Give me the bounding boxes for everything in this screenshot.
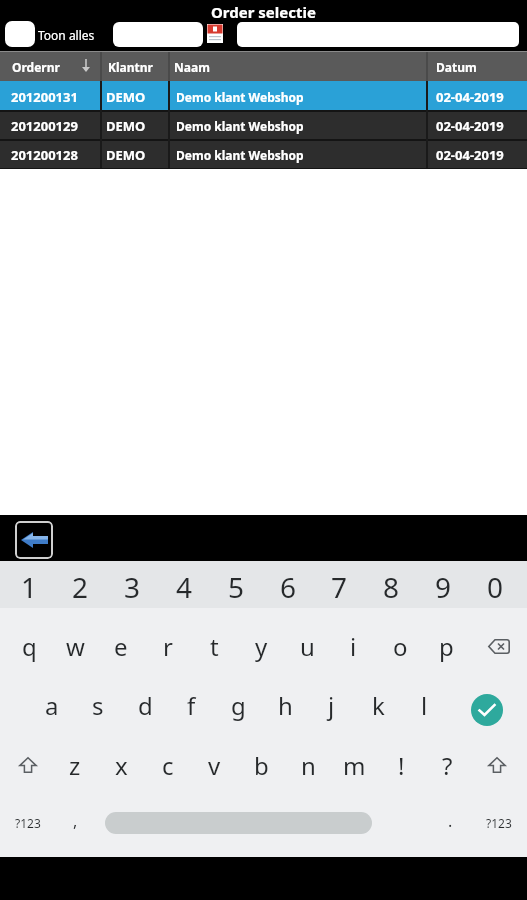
staticText: i [350,630,357,663]
staticText: c [162,749,174,782]
staticText: y [255,630,268,663]
button[interactable]: l [401,677,447,733]
staticText: DEMO [106,146,146,164]
button[interactable]: 5 [211,563,261,610]
staticText: 7 [331,568,348,606]
button[interactable] [207,24,224,44]
staticText: z [69,749,81,782]
staticText: j [328,689,335,722]
button[interactable]: z [52,737,98,793]
button[interactable] [237,22,519,47]
button[interactable]: 3 [107,563,157,610]
staticText: 1 [21,568,38,606]
staticText: DEMO [106,117,146,135]
button[interactable]: 0 [470,563,520,610]
staticText: 02-04-2019 [436,88,504,106]
staticText: b [254,749,269,782]
button[interactable] [15,521,53,559]
button[interactable]: u [284,618,330,674]
button[interactable]: 6 [263,563,313,610]
staticText: r [163,630,173,663]
staticText: Demo klant Webshop [176,89,304,105]
button[interactable]: d [122,677,168,733]
staticText: Klantnr [108,59,153,75]
button[interactable] [3,737,53,793]
staticText: q [22,630,37,663]
staticText: 9 [435,568,452,606]
staticText: s [92,689,104,722]
button[interactable] [0,141,527,168]
button[interactable]: v [191,737,237,793]
button[interactable] [0,112,527,139]
button[interactable] [474,618,524,674]
button[interactable]: e [98,618,144,674]
button[interactable]: 8 [366,563,416,610]
staticText: m [343,749,366,782]
staticText: 3 [124,568,141,606]
button[interactable]: 4 [159,563,209,610]
button[interactable]: h [262,677,308,733]
staticText: l [421,689,428,722]
staticText: 4 [176,568,193,606]
button[interactable]: j [308,677,354,733]
staticText: Demo klant Webshop [176,147,304,163]
staticText: w [66,630,85,663]
staticText: a [45,689,59,722]
button[interactable]: 9 [418,563,468,610]
button[interactable]: n [285,737,331,793]
staticText: 0 [487,568,504,606]
button[interactable]: p [423,618,469,674]
staticText: DEMO [106,88,146,106]
button[interactable]: c [145,737,191,793]
button[interactable]: 7 [314,563,364,610]
staticText: ?123 [486,815,512,831]
button[interactable]: s [75,677,121,733]
button[interactable] [0,81,527,110]
staticText: Toon alles [38,27,95,43]
button[interactable]: b [238,737,284,793]
staticText: v [208,749,221,782]
staticText: Datum [436,59,477,75]
button[interactable] [113,22,203,47]
button[interactable]: t [191,618,237,674]
staticText: g [231,689,246,722]
button[interactable] [472,737,522,793]
button[interactable]: m [331,737,377,793]
button[interactable] [5,21,35,47]
staticText: 2 [72,568,89,606]
button[interactable]: ?123 [473,795,525,851]
button[interactable]: ? [424,737,470,793]
staticText: . [448,810,453,832]
button[interactable]: q [6,618,52,674]
staticText: p [439,630,454,663]
button[interactable]: . [427,793,473,849]
button[interactable]: x [98,737,144,793]
button[interactable]: , [52,793,98,849]
button[interactable]: i [330,618,376,674]
staticText: k [372,689,385,722]
staticText: ! [398,749,405,782]
staticText: 201200131 [11,88,78,106]
button[interactable]: a [29,677,75,733]
button[interactable]: y [238,618,284,674]
button[interactable]: w [52,618,98,674]
staticText: d [138,689,153,722]
button[interactable]: ?123 [2,795,54,851]
button[interactable] [105,812,372,834]
button[interactable]: o [377,618,423,674]
staticText: u [300,630,315,663]
button[interactable]: f [168,677,214,733]
staticText: n [301,749,316,782]
staticText: 5 [228,568,245,606]
staticText: Ordernr [12,59,60,75]
button[interactable]: k [355,677,401,733]
button[interactable]: ! [378,737,424,793]
staticText: Demo klant Webshop [176,118,304,134]
button[interactable]: g [215,677,261,733]
button[interactable]: 2 [55,563,105,610]
button[interactable]: r [145,618,191,674]
staticText: f [187,689,196,722]
staticText: 201200128 [11,146,78,164]
button[interactable]: 1 [4,563,54,610]
button[interactable] [471,694,503,726]
